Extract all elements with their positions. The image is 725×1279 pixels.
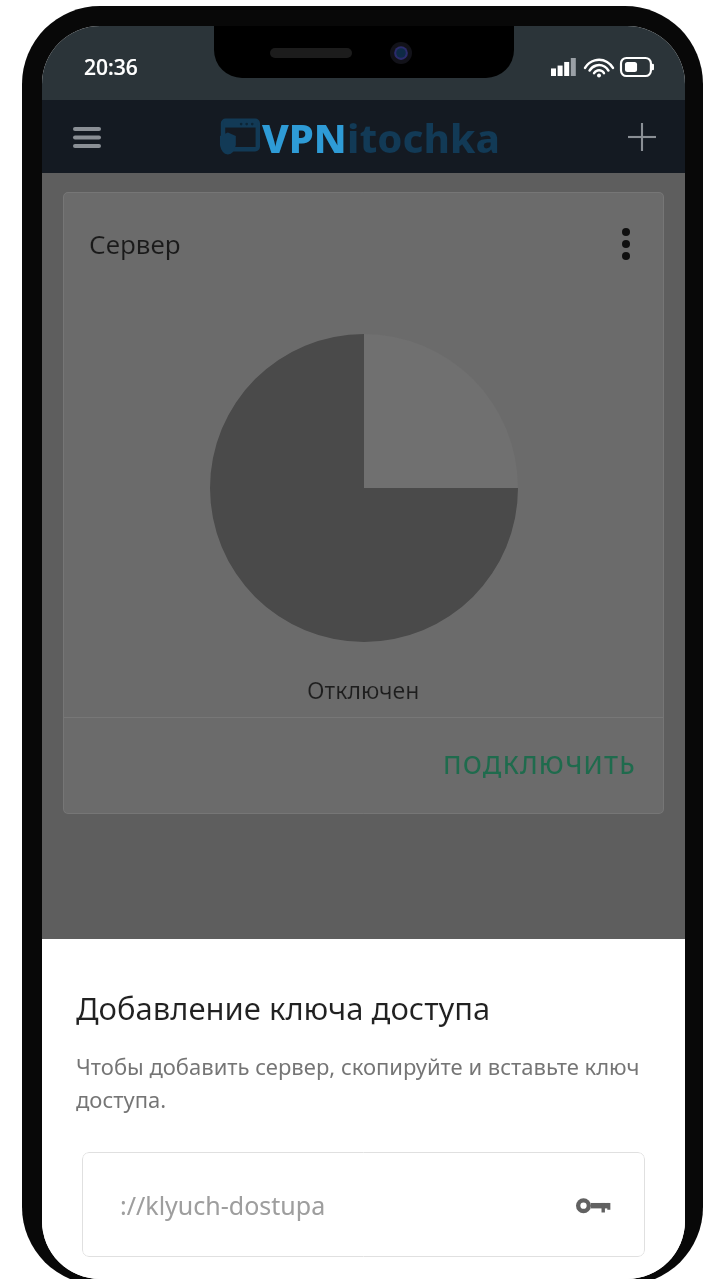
staticText: VPN	[262, 110, 347, 164]
staticText: 20:36	[84, 53, 138, 82]
staticText: Чтобы добавить сервер, скопируйте и вста…	[76, 1051, 651, 1114]
staticText: ПОДКЛЮЧИТЬ	[443, 747, 636, 781]
button[interactable]: More options	[600, 218, 652, 270]
button[interactable]: ://klyuch-dostupa	[82, 1152, 645, 1257]
button[interactable]: Open navigation menu	[58, 108, 116, 166]
staticText: Добавление ключа доступа	[76, 987, 491, 1029]
staticText: Сервер	[89, 226, 181, 261]
button[interactable]: ПОДКЛЮЧИТЬ	[425, 734, 654, 794]
staticText: Отключен	[307, 674, 420, 705]
button[interactable]: Add server	[613, 108, 671, 166]
staticText: itochka	[347, 110, 500, 164]
staticText: ://klyuch-dostupa	[120, 1188, 326, 1222]
